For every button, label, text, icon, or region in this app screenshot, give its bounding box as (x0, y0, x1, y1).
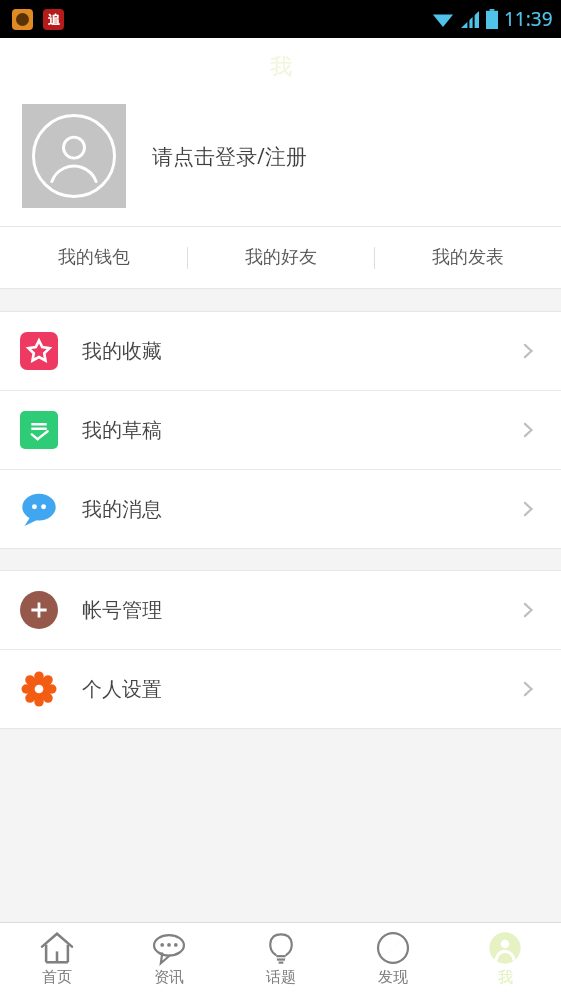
button[interactable]: 我 (449, 923, 561, 999)
button[interactable]: 我的消息 (0, 470, 561, 548)
button[interactable]: 我的草稿 (0, 391, 561, 469)
button[interactable]: 资讯 (113, 923, 225, 999)
staticText: 资讯 (154, 968, 184, 987)
staticText: 我的收藏 (82, 339, 162, 364)
button[interactable]: 帐号管理 (0, 571, 561, 649)
staticText: 我的发表 (432, 246, 504, 269)
staticText: 11:39 (504, 6, 553, 32)
staticText: 话题 (266, 968, 296, 987)
staticText: 我的草稿 (82, 418, 162, 443)
button[interactable]: 话题 (225, 923, 337, 999)
button[interactable]: 请点击登录/注册 (0, 96, 561, 226)
button[interactable]: 个人设置 (0, 650, 561, 728)
staticText: 帐号管理 (82, 598, 162, 623)
staticText: 发现 (378, 968, 408, 987)
staticText: 我的消息 (82, 497, 162, 522)
staticText: 我 (270, 53, 292, 81)
button[interactable]: 我的发表 (375, 227, 561, 288)
button[interactable]: 我的收藏 (0, 312, 561, 390)
button[interactable]: 首页 (0, 923, 113, 999)
staticText: 首页 (42, 968, 72, 987)
staticText: 我的钱包 (58, 246, 130, 269)
staticText: 我 (498, 968, 513, 987)
staticText: 请点击登录/注册 (152, 142, 307, 171)
staticText: 追 (48, 12, 60, 27)
button[interactable]: 我的好友 (188, 227, 374, 288)
staticText: 我的好友 (245, 246, 317, 269)
button[interactable]: 我的钱包 (0, 227, 187, 288)
button[interactable]: 发现 (337, 923, 449, 999)
staticText: 个人设置 (82, 677, 162, 702)
